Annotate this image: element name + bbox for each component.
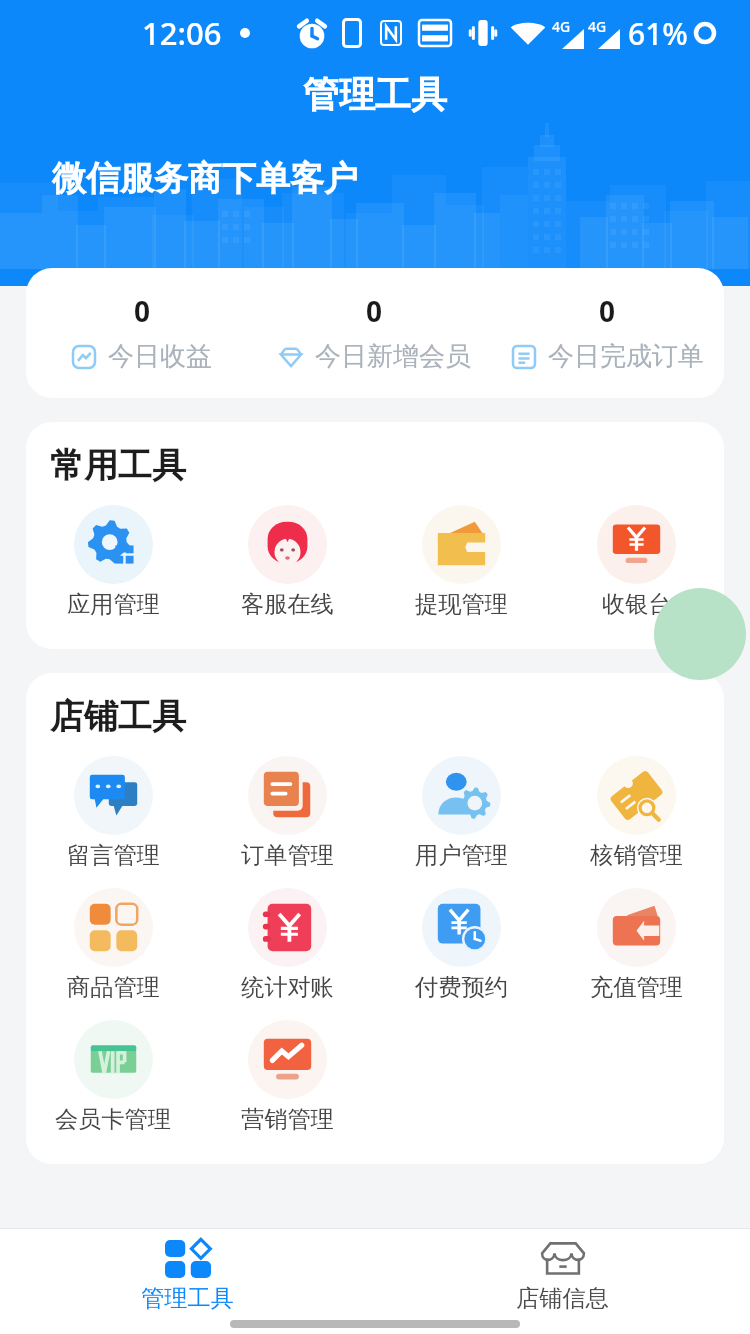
staticText: 充值管理 — [590, 973, 683, 1002]
button[interactable]: 会员卡管理 — [26, 1020, 200, 1134]
staticText: 用户管理 — [415, 841, 508, 870]
staticText: 4G — [588, 17, 607, 36]
staticText: 会员卡管理 — [55, 1105, 171, 1134]
staticText: 客服在线 — [241, 590, 334, 619]
staticText: 应用管理 — [67, 590, 160, 619]
staticText: 统计对账 — [241, 973, 334, 1002]
button[interactable]: 店铺信息 — [375, 1239, 750, 1313]
staticText: 店铺信息 — [516, 1284, 609, 1313]
button[interactable]: 营销管理 — [200, 1020, 374, 1134]
button[interactable]: 应用管理 — [26, 505, 200, 619]
staticText: 管理工具 — [303, 72, 447, 117]
staticText: 12:06 — [142, 12, 222, 54]
button[interactable]: 管理工具 — [0, 1239, 375, 1313]
button[interactable]: 统计对账 — [200, 888, 374, 1002]
staticText: 店铺工具 — [50, 695, 186, 738]
button[interactable]: 提现管理 — [374, 505, 549, 619]
button[interactable]: 核销管理 — [549, 756, 724, 870]
staticText: 商品管理 — [67, 973, 160, 1002]
staticText: 提现管理 — [415, 590, 508, 619]
button[interactable]: 0 — [26, 292, 258, 373]
staticText: 微信服务商下单客户 — [52, 157, 358, 200]
staticText: 留言管理 — [67, 841, 160, 870]
staticText: 今日完成订单 — [548, 340, 704, 373]
staticText: 管理工具 — [141, 1284, 234, 1313]
button[interactable]: 0 — [491, 292, 724, 373]
staticText: 61% — [628, 13, 688, 54]
button[interactable]: 留言管理 — [26, 756, 200, 870]
staticText: 今日新增会员 — [315, 340, 471, 373]
staticText: 0 — [366, 292, 383, 330]
staticText: 今日收益 — [108, 340, 212, 373]
staticText: 0 — [599, 292, 616, 330]
staticText: 收银台 — [602, 590, 672, 619]
staticText: 4G — [552, 17, 571, 36]
staticText: 常用工具 — [50, 444, 186, 487]
staticText: 营销管理 — [241, 1105, 334, 1134]
staticText: 0 — [134, 292, 151, 330]
staticText: 核销管理 — [590, 841, 683, 870]
button[interactable]: 充值管理 — [549, 888, 724, 1002]
staticText: 付费预约 — [415, 973, 508, 1002]
button[interactable]: 付费预约 — [374, 888, 549, 1002]
button[interactable]: 客服 — [654, 588, 746, 680]
button[interactable]: 商品管理 — [26, 888, 200, 1002]
button[interactable]: 用户管理 — [374, 756, 549, 870]
button[interactable]: 客服在线 — [200, 505, 374, 619]
button[interactable]: 订单管理 — [200, 756, 374, 870]
button[interactable]: 收银台 — [549, 505, 724, 619]
staticText: 订单管理 — [241, 841, 334, 870]
button[interactable]: 0 — [258, 292, 491, 373]
